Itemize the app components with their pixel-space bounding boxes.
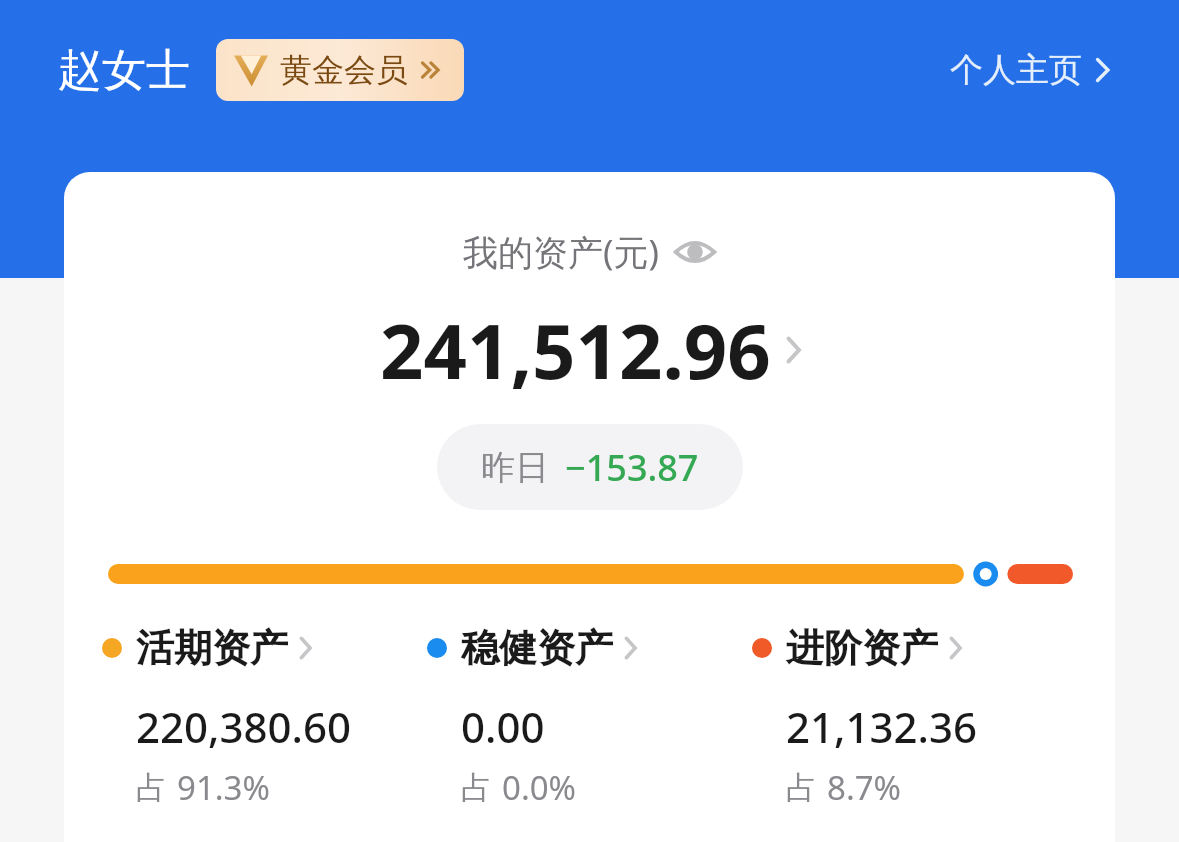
staticText: 91.3% [177, 765, 270, 810]
staticText: 个人主页 [950, 49, 1082, 91]
staticText: 241,512.96 [380, 298, 771, 402]
button[interactable]: 个人主页 [950, 49, 1109, 91]
staticText: 进阶资产 [786, 624, 938, 672]
staticText: 21,132.36 [786, 698, 978, 755]
button[interactable]: 我的资产(元) [463, 228, 716, 276]
staticText: −153.87 [565, 443, 699, 492]
staticText: 占 [461, 768, 492, 807]
staticText: 活期资产 [136, 624, 288, 672]
button[interactable]: 黄金会员 [216, 39, 464, 101]
button[interactable]: 241,512.96 [380, 298, 800, 402]
staticText: 占 [136, 768, 167, 807]
staticText: 0.0% [502, 765, 577, 810]
button[interactable]: 进阶资产 [752, 624, 1077, 810]
staticText: 黄金会员 [280, 50, 408, 90]
button[interactable]: 昨日 [437, 424, 743, 510]
button[interactable]: 活期资产 [102, 624, 427, 810]
staticText: 8.7% [827, 765, 902, 810]
staticText: 0.00 [461, 698, 545, 755]
staticText: 我的资产(元) [463, 228, 660, 276]
staticText: 昨日 [481, 446, 549, 489]
staticText: 220,380.60 [136, 698, 352, 755]
staticText: 稳健资产 [461, 624, 613, 672]
staticText: 占 [786, 768, 817, 807]
button[interactable]: 赵女士 [58, 43, 190, 98]
button[interactable]: 稳健资产 [427, 624, 752, 810]
